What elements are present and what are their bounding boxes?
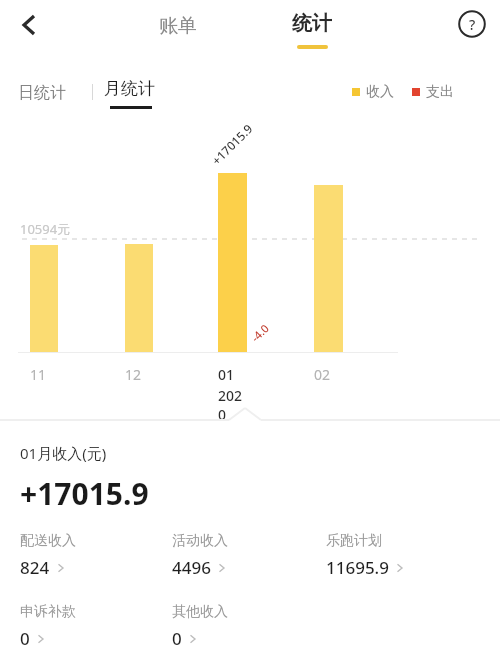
staticText: 824 bbox=[20, 556, 50, 579]
staticText: 活动收入 bbox=[172, 532, 228, 550]
staticText: 乐跑计划 bbox=[326, 532, 382, 550]
button[interactable]: 申诉补款 bbox=[20, 603, 160, 650]
staticText: 01月收入(元) bbox=[20, 443, 107, 463]
button[interactable]: 其他收入 bbox=[172, 603, 312, 650]
staticText: 2020 bbox=[218, 386, 247, 424]
staticText: 01月 bbox=[218, 365, 247, 384]
button[interactable]: 配送收入 bbox=[20, 532, 160, 579]
staticText: +17015.9 bbox=[208, 120, 256, 168]
staticText: 0 bbox=[20, 627, 30, 650]
staticText: 申诉补款 bbox=[20, 603, 76, 621]
button[interactable]: 日统计 bbox=[18, 78, 82, 108]
staticText: 0 bbox=[172, 627, 182, 650]
button[interactable]: Back bbox=[8, 4, 50, 46]
button[interactable]: 乐跑计划 bbox=[326, 532, 466, 579]
staticText: 统计 bbox=[292, 11, 332, 36]
button[interactable]: 账单 bbox=[140, 2, 216, 50]
staticText: 其他收入 bbox=[172, 603, 228, 621]
staticText: 02月 bbox=[314, 365, 343, 384]
button[interactable]: 活动收入 bbox=[172, 532, 312, 579]
staticText: 11695.9 bbox=[326, 556, 389, 579]
button[interactable]: 月统计 bbox=[104, 76, 170, 116]
staticText: 11月 bbox=[30, 365, 58, 384]
staticText: 配送收入 bbox=[20, 532, 76, 550]
staticText: ? bbox=[469, 15, 476, 34]
staticText: 日统计 bbox=[18, 83, 66, 103]
staticText: 12月 bbox=[125, 365, 153, 384]
staticText: -4.0 bbox=[248, 320, 272, 345]
staticText: 账单 bbox=[159, 14, 197, 38]
button[interactable]: Help bbox=[452, 4, 492, 44]
staticText: +17015.9 bbox=[20, 473, 149, 514]
staticText: 收入 bbox=[366, 83, 394, 101]
staticText: 10594元 bbox=[20, 220, 71, 238]
staticText: 支出 bbox=[426, 83, 454, 101]
staticText: 4496 bbox=[172, 556, 211, 579]
staticText: 月统计 bbox=[104, 78, 155, 99]
button[interactable]: 统计 bbox=[274, 2, 350, 54]
